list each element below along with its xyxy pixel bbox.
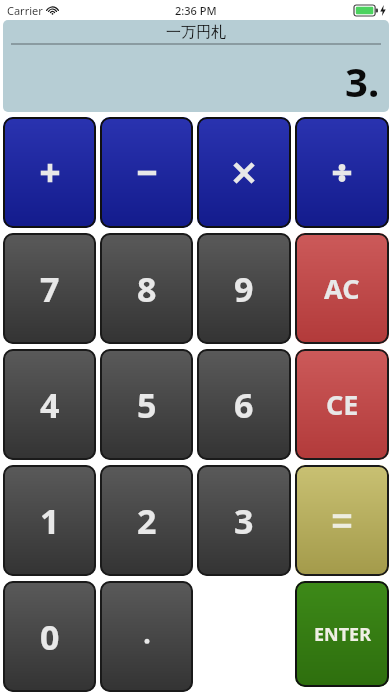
button[interactable]: Divide [295, 117, 389, 228]
staticText: CE [326, 386, 359, 423]
staticText: 一万円札 [166, 23, 226, 42]
staticText: 2 [137, 498, 157, 544]
button[interactable]: 0 [3, 581, 96, 692]
staticText: ENTER [314, 622, 371, 647]
button[interactable]: 4 [3, 349, 96, 460]
button[interactable]: 9 [197, 233, 291, 344]
staticText: 0 [40, 614, 60, 660]
button[interactable]: Equals [295, 465, 389, 576]
staticText: 3. [345, 54, 380, 108]
staticText: 3 [234, 498, 254, 544]
staticText: 6 [234, 382, 254, 428]
button[interactable]: 8 [100, 233, 193, 344]
button[interactable]: 1 [3, 465, 96, 576]
button[interactable]: Decimal point [100, 581, 193, 692]
button[interactable]: 7 [3, 233, 96, 344]
button[interactable]: ENTER [295, 581, 389, 687]
button[interactable]: Minus [100, 117, 193, 228]
button[interactable]: Plus [3, 117, 96, 228]
button[interactable]: 2 [100, 465, 193, 576]
button[interactable]: 6 [197, 349, 291, 460]
button[interactable]: AC [295, 233, 389, 344]
staticText: Carrier [7, 3, 43, 18]
button[interactable]: 5 [100, 349, 193, 460]
staticText: 1 [40, 498, 60, 544]
button[interactable]: 3 [197, 465, 291, 576]
staticText: 8 [137, 266, 157, 312]
staticText: 4 [40, 382, 60, 428]
staticText: 2:36 PM [175, 3, 217, 18]
staticText: 7 [40, 266, 60, 312]
staticText: AC [324, 270, 360, 307]
button[interactable]: Multiply [197, 117, 291, 228]
button[interactable]: CE [295, 349, 389, 460]
staticText: 9 [234, 266, 254, 312]
staticText: 5 [137, 382, 157, 428]
